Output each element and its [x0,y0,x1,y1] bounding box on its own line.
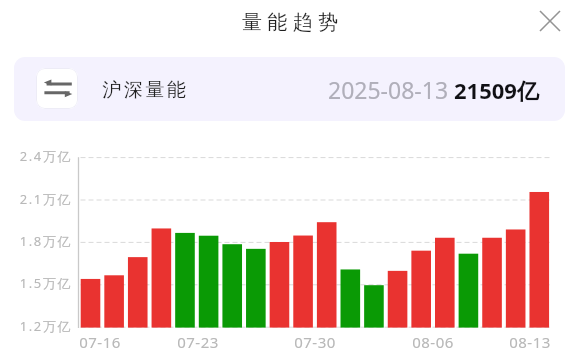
staticText: 1.2万亿 [1,317,72,335]
button[interactable]: 沪深量能 [14,57,565,121]
staticText: 08-13 [500,332,560,352]
staticText: 2.1万亿 [1,190,72,208]
staticText: 2.4万亿 [1,147,72,165]
staticText: 2025-08-13 [328,74,449,105]
staticText: 07-23 [168,332,228,352]
staticText: 1.8万亿 [1,232,72,250]
staticText: 量能趋势 [242,10,344,35]
staticText: 07-30 [285,332,345,352]
staticText: 1.5万亿 [1,274,72,292]
staticText: 21509亿 [454,75,539,105]
staticText: 08-06 [403,332,463,352]
button[interactable]: Close [533,4,567,38]
staticText: 07-16 [70,332,130,352]
staticText: 沪深量能 [101,78,187,102]
